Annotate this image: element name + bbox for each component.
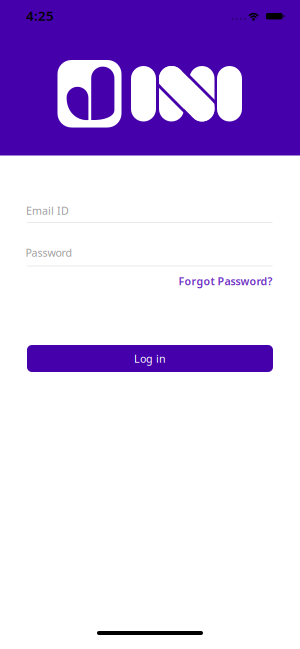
staticText: 4:25 <box>26 7 54 24</box>
staticText: Forgot Password? <box>178 274 272 288</box>
staticText: Password <box>25 245 72 260</box>
button[interactable]: Email ID <box>27 204 272 223</box>
staticText: Email ID <box>26 203 69 218</box>
staticText: Log in <box>134 351 166 366</box>
button[interactable]: Password <box>27 246 272 266</box>
button[interactable]: Log in <box>27 345 273 372</box>
button[interactable]: Forgot Password? <box>178 274 272 288</box>
